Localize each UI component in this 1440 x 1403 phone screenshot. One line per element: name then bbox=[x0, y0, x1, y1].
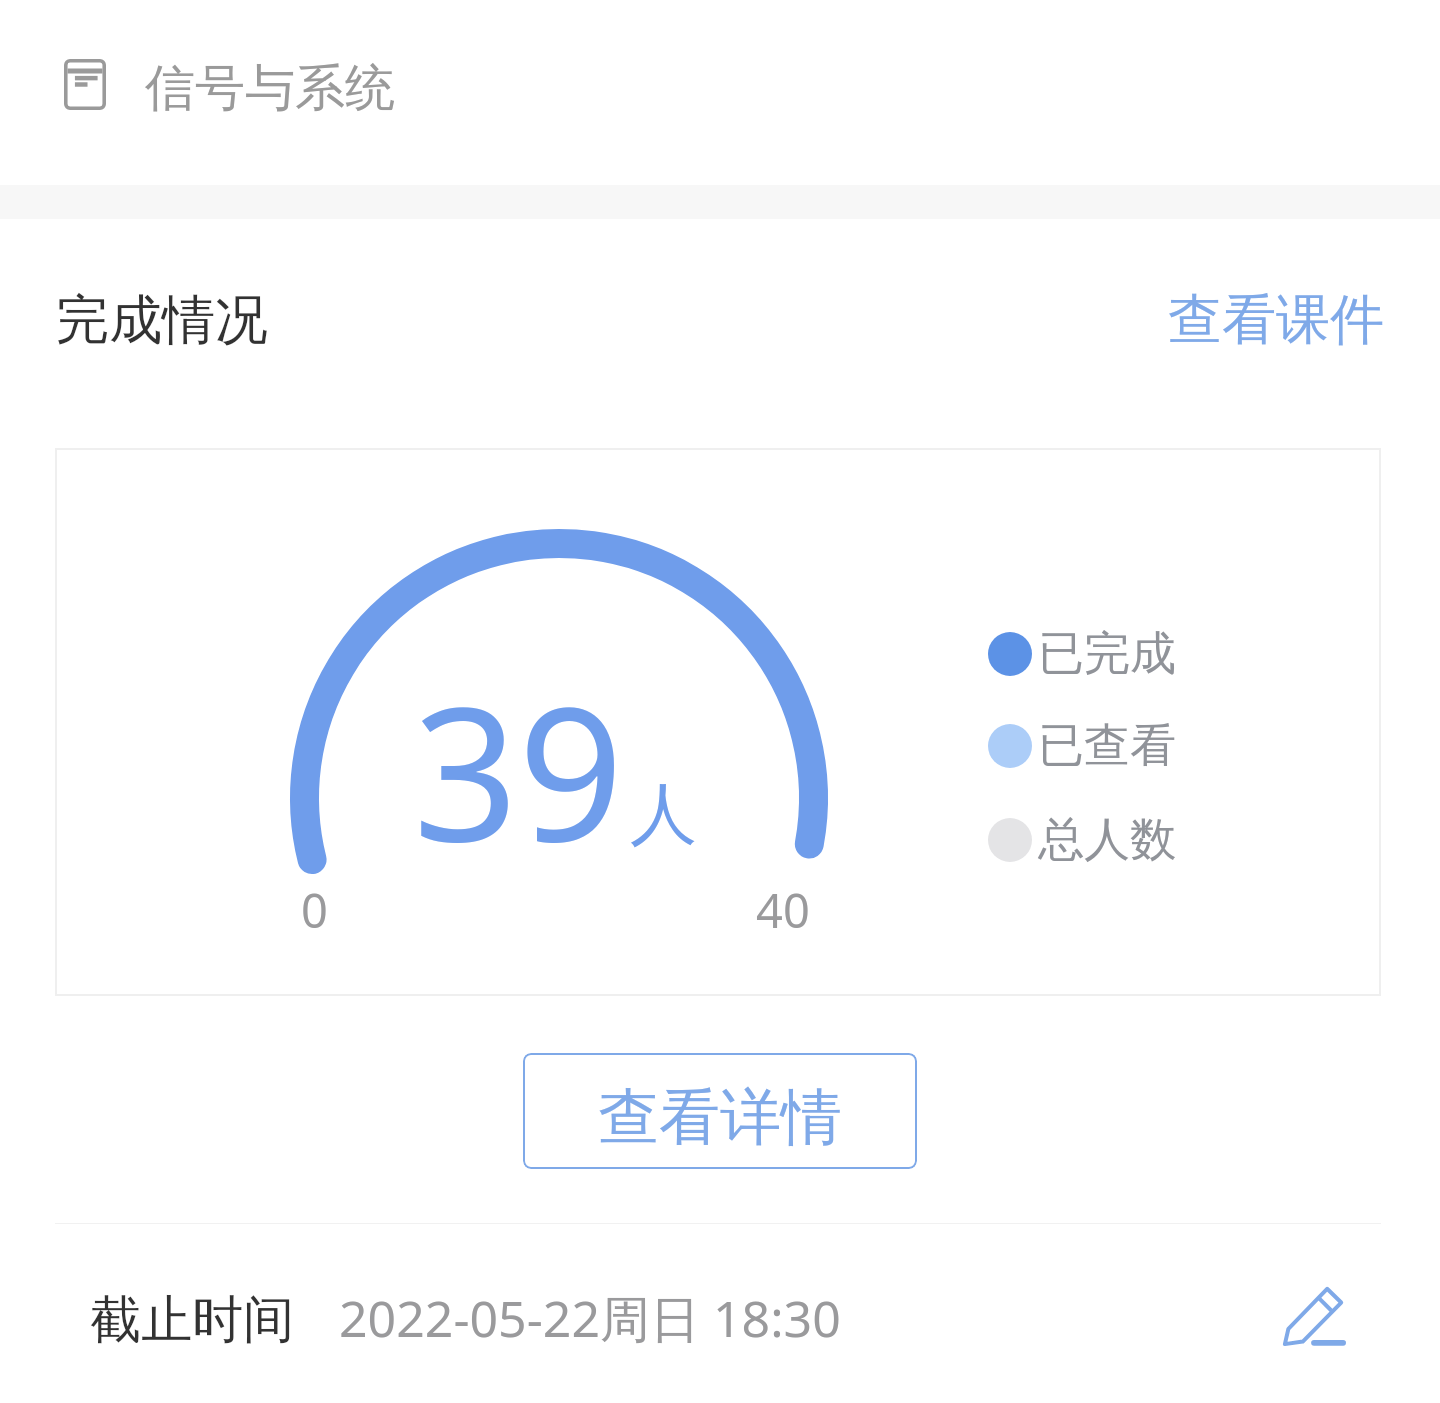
staticText: 查看课件 bbox=[1168, 286, 1384, 354]
staticText: 查看详情 bbox=[598, 1079, 842, 1156]
staticText: 截止时间 bbox=[90, 1288, 294, 1352]
staticText: 39 bbox=[413, 644, 624, 895]
staticText: 完成情况 bbox=[56, 287, 268, 354]
staticText: 人 bbox=[630, 772, 697, 856]
button[interactable]: 信号与系统 bbox=[64, 20, 1376, 148]
staticText: 40 bbox=[756, 878, 810, 942]
button[interactable]: 总人数 bbox=[988, 811, 1176, 869]
button[interactable]: Edit deadline bbox=[1274, 1275, 1354, 1355]
staticText: 总人数 bbox=[1038, 811, 1176, 869]
button[interactable]: 查看课件 bbox=[1168, 286, 1384, 354]
staticText: 2022-05-22周日 18:30 bbox=[339, 1284, 841, 1352]
button[interactable]: 已查看 bbox=[988, 717, 1176, 775]
staticText: 0 bbox=[301, 878, 328, 942]
staticText: 已查看 bbox=[1038, 717, 1176, 775]
button[interactable]: 查看详情 bbox=[523, 1053, 917, 1169]
button[interactable]: 已完成 bbox=[988, 625, 1176, 683]
staticText: 已完成 bbox=[1038, 625, 1176, 683]
staticText: 信号与系统 bbox=[145, 57, 395, 120]
